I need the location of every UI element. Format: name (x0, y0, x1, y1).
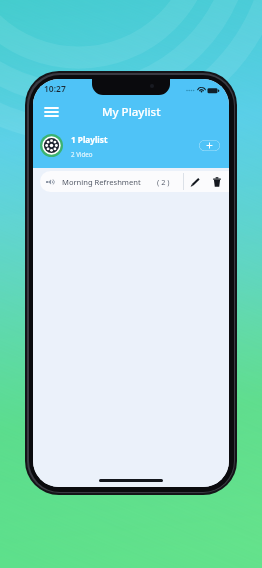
button[interactable]: Menu (39, 100, 63, 124)
button[interactable]: Morning Refreshment (40, 171, 229, 192)
button[interactable]: Delete (206, 171, 228, 192)
staticText: Morning Refreshment (62, 177, 141, 187)
staticText: My Playlist (102, 104, 161, 120)
staticText: 10:27 (44, 83, 66, 95)
staticText: ( 2 ) (157, 177, 170, 187)
button[interactable]: Edit (184, 171, 206, 192)
staticText: 1 Playlist (71, 134, 108, 145)
staticText: 2 Video (71, 150, 93, 158)
button[interactable]: Add playlist (199, 140, 220, 151)
